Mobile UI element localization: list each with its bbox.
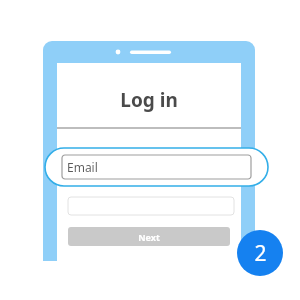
staticText: 2 [254,239,267,268]
staticText: Next [138,231,160,243]
staticText: Email [67,159,98,175]
button[interactable]: Password field [68,197,234,215]
button[interactable]: Step 2 [237,230,283,276]
button[interactable]: Email [45,148,268,186]
button[interactable]: Log in [57,84,241,116]
button[interactable]: Next [68,227,230,246]
staticText: Log in [120,87,178,113]
